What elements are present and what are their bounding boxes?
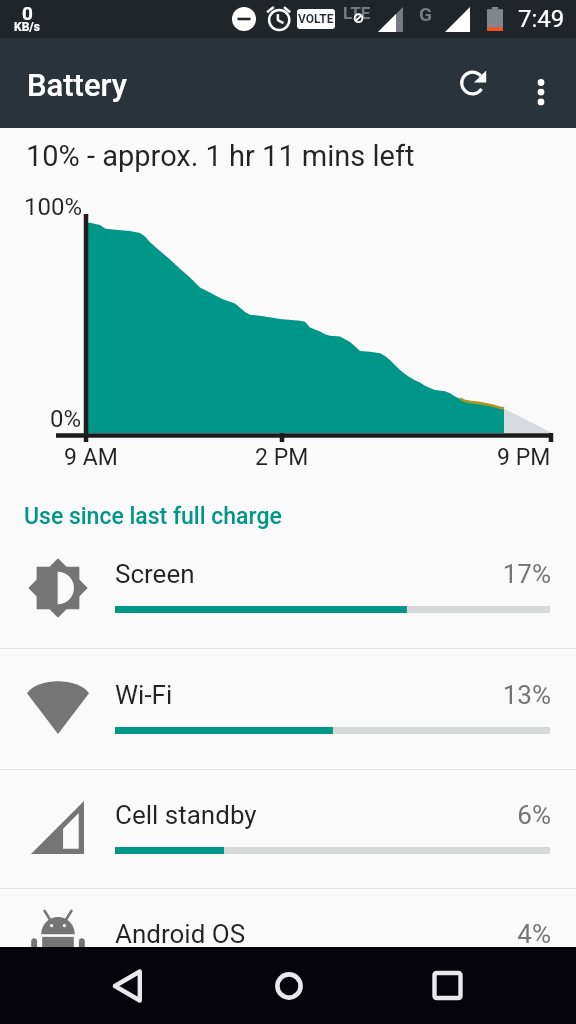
staticText: Screen [115,559,195,589]
staticText: 0 [22,2,33,24]
staticText: 100% [24,193,83,221]
button[interactable]: Wi-Fi [0,649,576,769]
staticText: G [419,3,432,25]
staticText: 10% - approx. 1 hr 11 mins left [26,139,415,173]
staticText: 6% [400,800,551,830]
staticText: Android OS [115,919,246,949]
button[interactable]: Cell standby [0,769,576,889]
staticText: 0% [50,405,82,433]
staticText: VOLTE [298,12,334,26]
staticText: 13% [400,680,551,710]
button[interactable]: Back [92,949,165,1022]
staticText: Wi-Fi [115,680,173,710]
button[interactable]: Refresh [449,59,497,107]
staticText: 9 AM [64,444,118,471]
staticText: 17% [400,559,551,589]
staticText: Battery [27,67,127,103]
button[interactable]: Recents [411,949,484,1022]
staticText: KB/s [14,20,40,34]
staticText: 2 PM [255,444,309,471]
button[interactable]: Android OS [0,888,576,1008]
button[interactable]: More options [517,59,565,107]
button[interactable]: Home [252,949,325,1022]
staticText: 4% [400,919,551,949]
staticText: Cell standby [115,800,257,830]
button[interactable]: Screen [0,528,576,648]
staticText: 9 PM [497,444,551,471]
staticText: Use since last full charge [24,503,282,530]
staticText: LTE [343,3,371,23]
staticText: 7:49 [518,5,565,33]
